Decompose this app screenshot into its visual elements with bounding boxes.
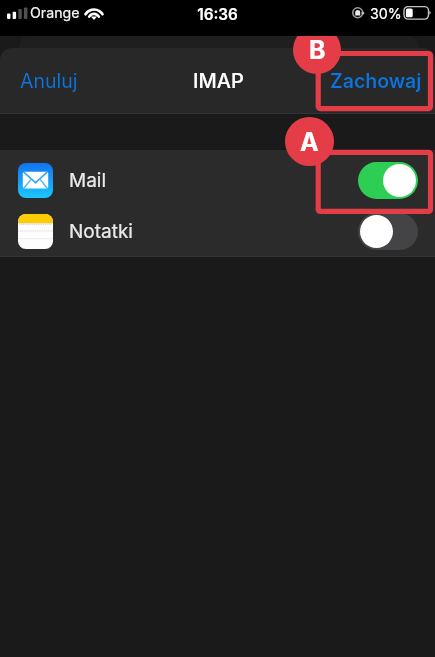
staticText: A (300, 127, 319, 157)
staticText: Notatki (69, 220, 133, 243)
button[interactable]: Anuluj (0, 53, 94, 109)
staticText: 30% (370, 5, 402, 22)
staticText: B (309, 35, 326, 65)
staticText: IMAP (193, 69, 244, 93)
staticText: Mail (69, 169, 107, 192)
button[interactable]: Zachowaj (314, 53, 435, 109)
button[interactable]: Switch on (358, 162, 418, 199)
staticText: Anuluj (20, 69, 78, 93)
staticText: Orange (30, 4, 80, 21)
other: Cellular signal (7, 7, 28, 19)
button[interactable]: Mail (0, 154, 435, 206)
button[interactable]: Switch off (358, 213, 418, 250)
button[interactable]: Notatki (0, 206, 435, 257)
other: Location services (352, 7, 365, 19)
staticText: 16:36 (0, 5, 435, 24)
staticText: Zachowaj (330, 69, 422, 93)
other: Wi-Fi (85, 5, 103, 20)
